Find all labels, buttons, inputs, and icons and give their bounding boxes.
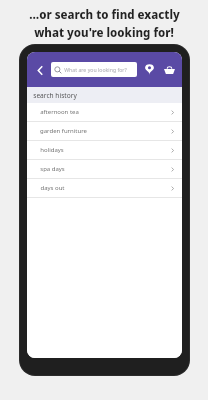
staticText: afternoon tea	[40, 108, 79, 116]
staticText: holidays	[40, 146, 64, 154]
button[interactable]: spa days	[27, 160, 182, 179]
staticText: search history	[33, 91, 77, 100]
button[interactable]: Back	[31, 61, 49, 79]
button[interactable]: holidays	[27, 141, 182, 160]
button[interactable]: garden furniture	[27, 122, 182, 141]
button[interactable]: afternoon tea	[27, 103, 182, 122]
staticText: what you're looking for!	[34, 25, 174, 41]
button[interactable]: Basket	[160, 61, 178, 79]
button[interactable]: days out	[27, 179, 182, 198]
staticText: garden furniture	[40, 127, 87, 135]
button[interactable]: Store locator	[141, 61, 158, 78]
button[interactable]: What are you looking for?	[51, 62, 137, 77]
staticText: days out	[40, 184, 65, 192]
staticText: What are you looking for?	[64, 66, 127, 73]
staticText: spa days	[40, 165, 65, 173]
staticText: …or search to find exactly	[29, 7, 180, 23]
